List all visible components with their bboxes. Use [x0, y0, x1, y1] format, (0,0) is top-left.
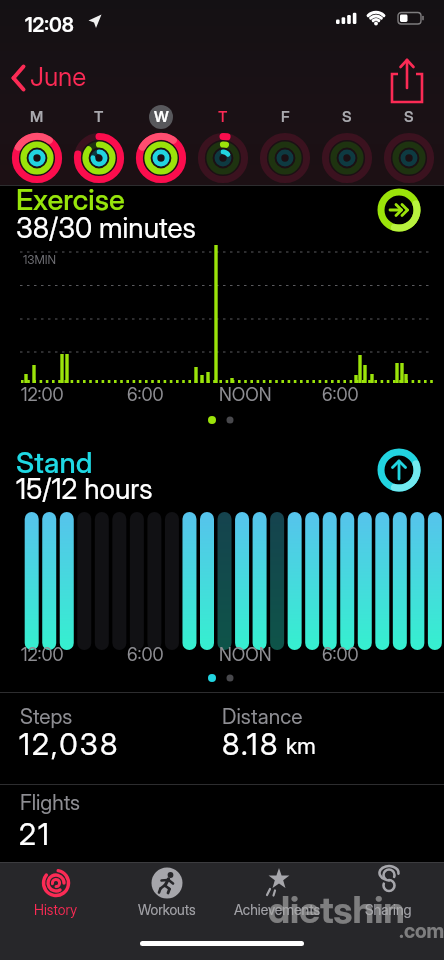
staticText: dietshin — [268, 887, 405, 932]
staticText: Exercise — [16, 182, 125, 217]
staticText: Sharing — [365, 901, 412, 918]
staticText: Flights — [20, 790, 80, 815]
button[interactable]: Steps — [0, 694, 444, 784]
staticText: 6:00 — [127, 384, 164, 406]
staticText: 6:00 — [322, 644, 359, 666]
button[interactable] — [376, 447, 422, 493]
button[interactable]: Sharing — [333, 862, 444, 924]
staticText: NOON — [219, 644, 272, 666]
button[interactable]: Workouts — [111, 862, 222, 924]
staticText: 12,038 — [19, 726, 120, 762]
staticText: Achievements — [234, 901, 321, 918]
button[interactable]: History — [0, 862, 111, 924]
button[interactable]: Flights — [0, 786, 444, 862]
staticText: T — [218, 107, 228, 125]
staticText: F — [281, 107, 290, 125]
staticText: T — [94, 107, 104, 125]
staticText: Steps — [20, 704, 73, 729]
staticText: Distance — [222, 704, 303, 729]
button[interactable] — [386, 56, 430, 108]
button[interactable]: June — [8, 56, 118, 98]
staticText: 12:00 — [21, 384, 64, 406]
staticText: W — [154, 107, 169, 125]
staticText: 38/30 minutes — [16, 211, 196, 245]
staticText: 13MIN — [23, 252, 57, 267]
staticText: S — [342, 107, 352, 125]
staticText: 21 — [19, 816, 52, 852]
staticText: 6:00 — [127, 644, 164, 666]
staticText: 15/12 hours — [16, 472, 153, 506]
staticText: Workouts — [138, 901, 196, 918]
staticText: M — [30, 107, 44, 125]
staticText: June — [30, 61, 87, 92]
staticText: S — [404, 107, 414, 125]
staticText: History — [34, 901, 78, 918]
staticText: km — [286, 733, 316, 760]
button[interactable] — [376, 187, 422, 233]
staticText: 8.18 — [222, 726, 280, 762]
staticText: 12:00 — [21, 644, 64, 666]
staticText: .com — [399, 919, 444, 943]
staticText: NOON — [219, 384, 272, 406]
button[interactable]: Achievements — [222, 862, 333, 924]
staticText: 12:08 — [25, 13, 74, 37]
staticText: Stand — [16, 445, 93, 480]
button[interactable] — [0, 0, 444, 190]
staticText: 6:00 — [322, 384, 359, 406]
